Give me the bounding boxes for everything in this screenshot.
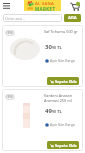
staticText: ARA	[68, 15, 77, 21]
button[interactable]: Cart	[68, 0, 81, 12]
button[interactable]: Sepete Ekle	[47, 141, 79, 149]
staticText: TL	[57, 109, 62, 115]
button[interactable]: Home logo	[24, 0, 61, 11]
staticText: 49	[45, 107, 52, 115]
staticText: Ürün ara...	[5, 16, 25, 21]
staticText: YENİ	[6, 95, 14, 99]
staticText: Kardeni Anason Aromasi 250 ml	[44, 93, 81, 103]
staticText: AL SANA	[35, 1, 55, 6]
button[interactable]: Sepete Ekle	[47, 77, 79, 85]
button[interactable]: YENİ	[2, 89, 83, 151]
staticText: 30	[45, 43, 52, 51]
button[interactable]: ARA	[64, 14, 81, 22]
button[interactable]: YENİ	[2, 25, 83, 87]
staticText: Sepete Ekle	[55, 143, 77, 148]
staticText: Aynı Gün Kargo	[50, 58, 75, 63]
staticText: Saf Tohumu 500 gr	[44, 29, 81, 34]
staticText: YENİ	[6, 31, 14, 35]
staticText: TL	[57, 45, 62, 51]
staticText: 90	[52, 109, 56, 114]
button[interactable]: Ürün ara...	[3, 14, 62, 22]
staticText: 90	[52, 45, 56, 50]
staticText: MARKET	[35, 6, 56, 12]
staticText: Sepete Ekle	[55, 79, 77, 84]
staticText: Aynı Gün Kargo	[50, 122, 75, 127]
button[interactable]: Menu	[1, 1, 12, 11]
